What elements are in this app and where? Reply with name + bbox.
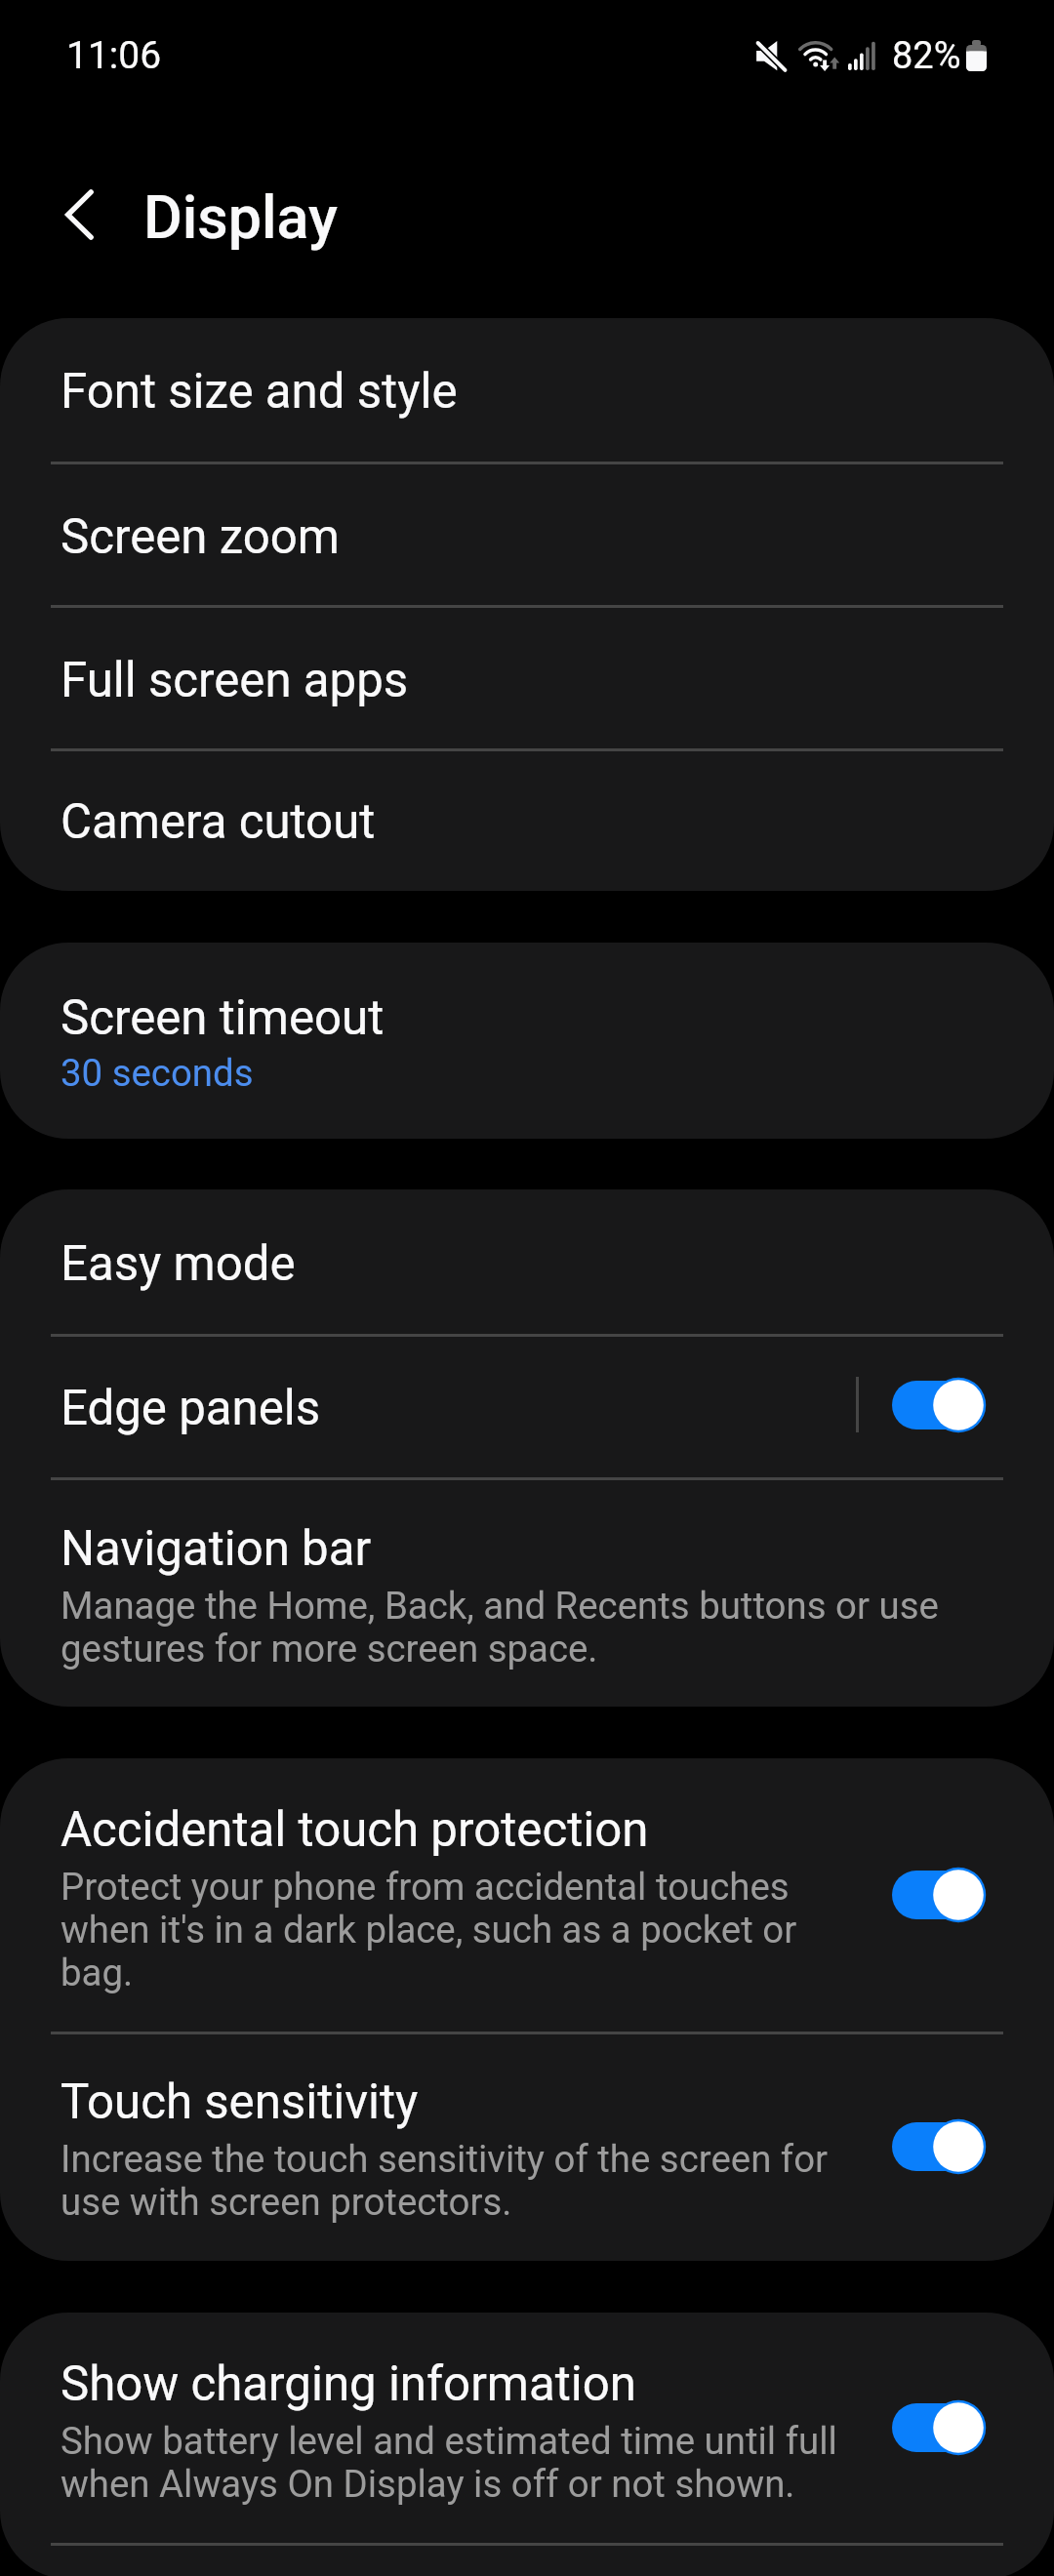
staticText: Easy mode [61, 1235, 296, 1292]
staticText: Navigation bar [61, 1520, 372, 1577]
staticText: Font size and style [61, 363, 458, 420]
other: Sound off [751, 37, 790, 76]
other: Mobile signal [845, 39, 878, 72]
staticText: Screen zoom [61, 508, 340, 565]
button[interactable]: Toggle on [889, 2398, 987, 2457]
button[interactable]: Edge panels [0, 1336, 1054, 1479]
staticText: Manage the Home, Back, and Recents butto… [61, 1584, 939, 1670]
other: Battery 82 percent [962, 37, 990, 74]
button[interactable]: Easy mode [0, 1189, 1054, 1335]
staticText: Touch sensitivity [61, 2073, 419, 2130]
staticText: Camera cutout [61, 793, 376, 850]
staticText: Increase the touch sensitivity of the sc… [61, 2137, 829, 2224]
button[interactable]: Back [43, 176, 121, 254]
other: Wi-Fi [792, 37, 843, 74]
button[interactable]: Touch sensitivity [0, 2034, 1054, 2261]
button[interactable]: Navigation bar [0, 1479, 1054, 1707]
staticText: Screen timeout [61, 989, 385, 1046]
staticText: Accidental touch protection [61, 1801, 649, 1858]
staticText: 82% [892, 34, 961, 78]
staticText: 30 seconds [61, 1051, 254, 1095]
staticText: Show battery level and estimated time un… [61, 2419, 837, 2506]
button[interactable]: Full screen apps [0, 607, 1054, 750]
button[interactable]: Toggle on [889, 1866, 987, 1924]
staticText: Full screen apps [61, 652, 409, 708]
staticText: Protect your phone from accidental touch… [61, 1865, 797, 1994]
staticText: Show charging information [61, 2355, 636, 2412]
button[interactable]: Toggle on [889, 1376, 987, 1434]
staticText: 11:06 [66, 33, 162, 78]
button[interactable]: Font size and style [0, 318, 1054, 463]
staticText: Display [143, 182, 338, 252]
button[interactable]: Camera cutout [0, 750, 1054, 891]
button[interactable]: Screen zoom [0, 463, 1054, 607]
button[interactable]: Screen timeout [0, 943, 1054, 1139]
button[interactable]: Show charging information [0, 2313, 1054, 2543]
button[interactable]: Toggle on [889, 2117, 987, 2176]
staticText: Edge panels [61, 1380, 321, 1436]
button[interactable]: Accidental touch protection [0, 1758, 1054, 2032]
